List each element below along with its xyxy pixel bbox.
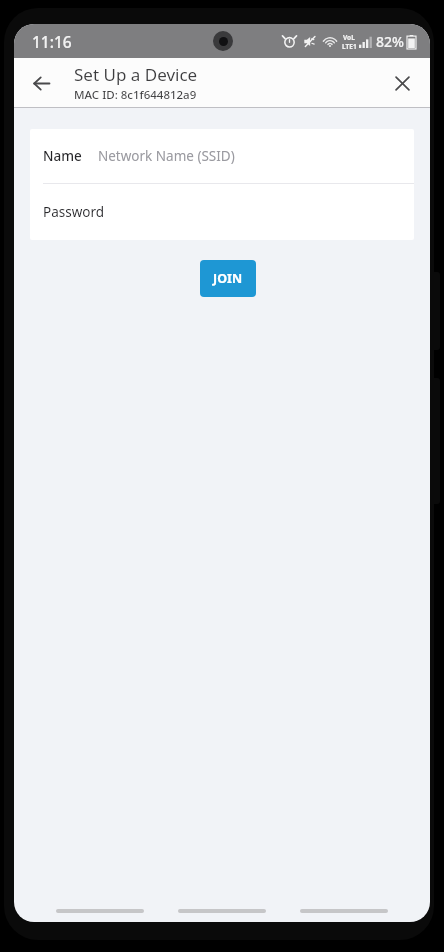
staticText: 11:16 — [32, 31, 72, 52]
staticText: JOIN — [213, 270, 243, 287]
staticText: LTE1 — [342, 42, 357, 51]
button[interactable]: Back — [21, 63, 61, 103]
staticText: MAC ID: 8c1f644812a9 — [74, 87, 197, 103]
button[interactable]: JOIN — [200, 260, 256, 297]
staticText: Name — [43, 147, 82, 165]
staticText: 82% — [376, 32, 404, 51]
button[interactable]: Name — [30, 129, 414, 183]
button[interactable]: Navigation button — [300, 909, 388, 913]
staticText: Password — [43, 203, 105, 221]
button[interactable]: Close — [382, 63, 422, 103]
staticText: Network Name (SSID) — [98, 147, 235, 165]
staticText: VoL — [343, 33, 355, 42]
button[interactable]: Password — [30, 184, 414, 240]
button[interactable]: Navigation button — [56, 909, 144, 913]
staticText: Set Up a Device — [74, 63, 198, 86]
button[interactable]: Navigation button — [178, 909, 266, 913]
